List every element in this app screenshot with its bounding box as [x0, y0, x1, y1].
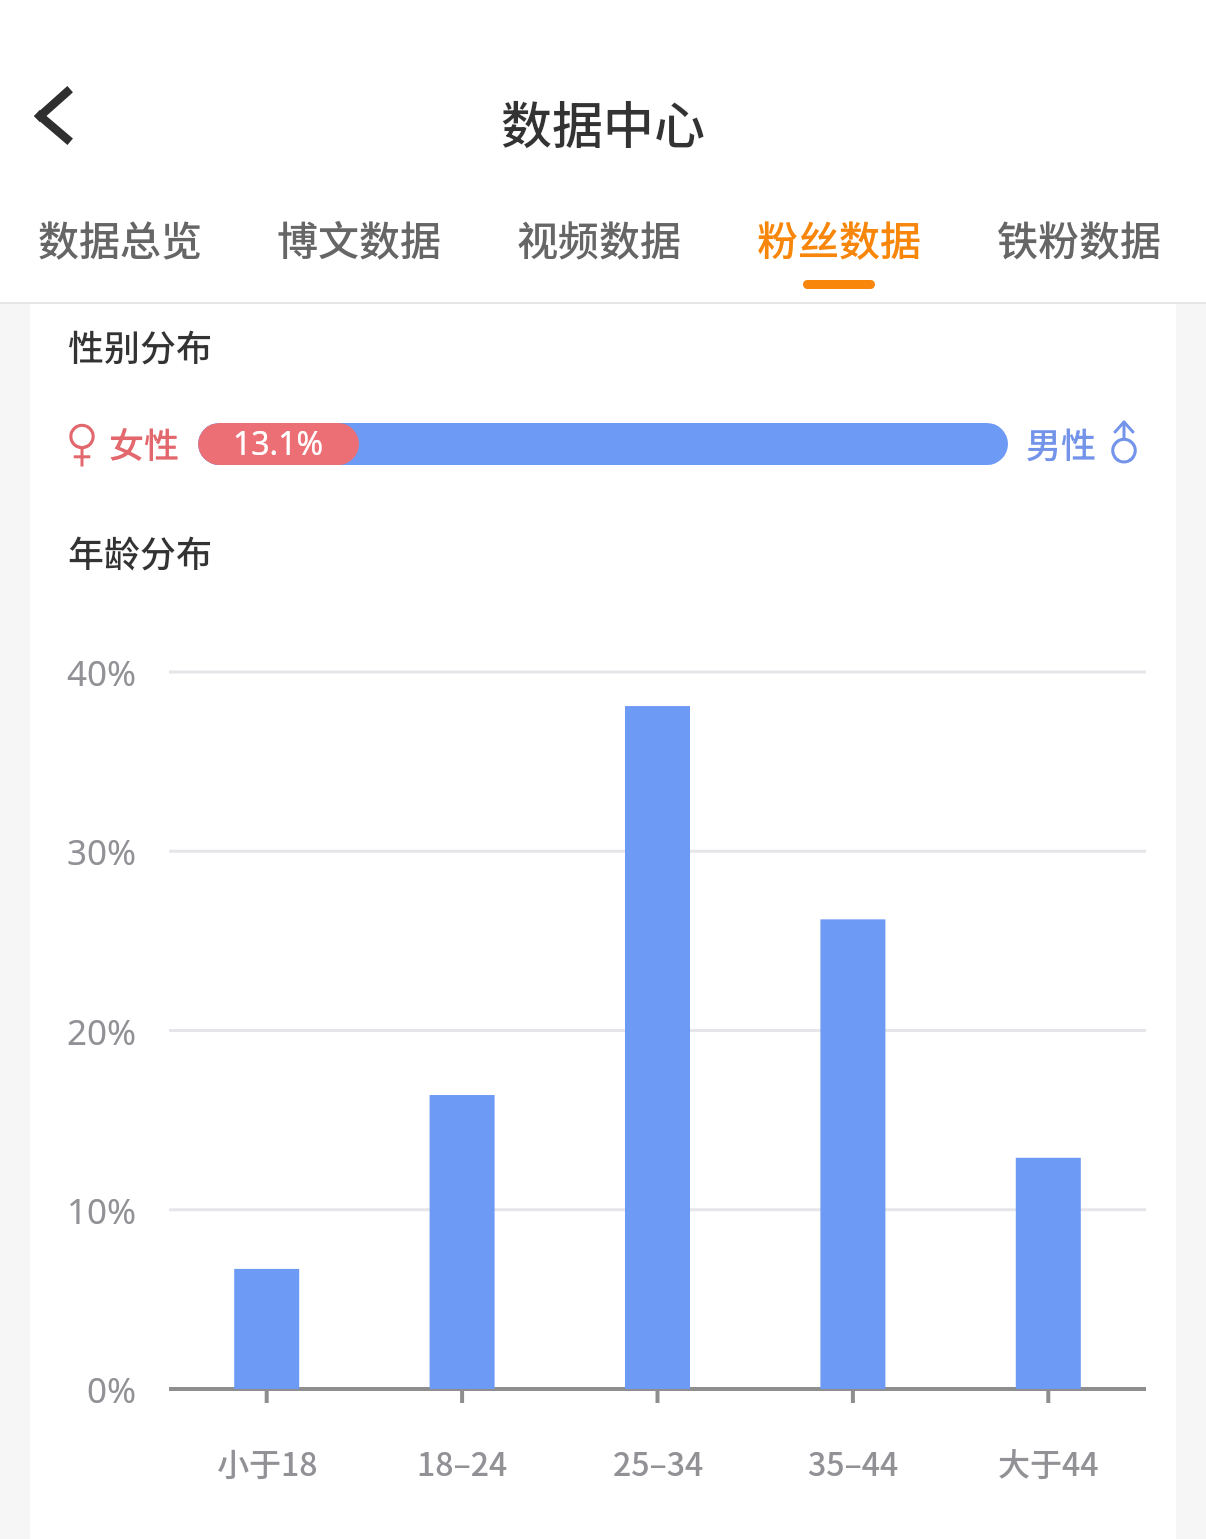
- staticText: 视频数据: [517, 208, 681, 267]
- staticText: 25–34: [613, 1439, 704, 1485]
- staticText: 30%: [67, 828, 137, 876]
- button[interactable]: 数据总览: [0, 182, 239, 304]
- staticText: 大于44: [998, 1439, 1099, 1485]
- staticText: 铁粉数据: [997, 208, 1161, 267]
- staticText: 男性: [1026, 417, 1097, 468]
- staticText: 年龄分布: [68, 525, 213, 577]
- button[interactable]: Back: [8, 71, 96, 159]
- staticText: 粉丝数据: [757, 208, 921, 267]
- staticText: 20%: [67, 1008, 137, 1056]
- staticText: 40%: [67, 649, 137, 697]
- staticText: 35–44: [808, 1439, 899, 1485]
- staticText: 性别分布: [68, 319, 213, 371]
- staticText: 女性: [109, 417, 180, 468]
- staticText: 小于18: [217, 1439, 318, 1485]
- staticText: 数据中心: [501, 85, 706, 159]
- button[interactable]: 博文数据: [239, 182, 479, 304]
- button[interactable]: 粉丝数据: [719, 182, 959, 304]
- button[interactable]: 视频数据: [479, 182, 719, 304]
- staticText: 13.1%: [233, 423, 324, 463]
- staticText: 0%: [87, 1366, 137, 1414]
- staticText: 博文数据: [277, 208, 441, 267]
- staticText: 数据总览: [38, 208, 202, 267]
- staticText: 10%: [67, 1187, 137, 1235]
- staticText: 18–24: [417, 1439, 508, 1485]
- button[interactable]: 铁粉数据: [959, 182, 1199, 304]
